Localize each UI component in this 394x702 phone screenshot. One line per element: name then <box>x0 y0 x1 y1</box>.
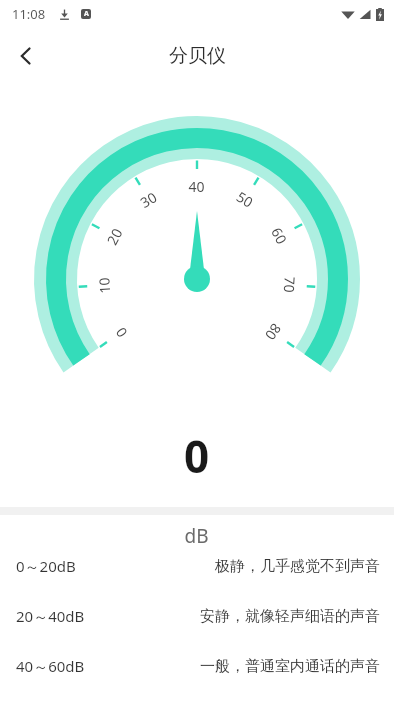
staticText: 一般，普通室内通话的声音 <box>200 657 380 676</box>
staticText: 0～20dB <box>16 556 76 576</box>
staticText: 11:08 <box>12 5 46 23</box>
staticText: 极静，几乎感觉不到声音 <box>215 557 380 576</box>
staticText: 40～60dB <box>16 656 85 676</box>
button[interactable]: 20～40dB <box>0 591 394 641</box>
button[interactable]: Back <box>4 34 48 78</box>
staticText: 分贝仪 <box>169 44 226 68</box>
staticText: 20～40dB <box>16 606 85 626</box>
staticText: A <box>84 9 89 19</box>
staticText: 安静，就像轻声细语的声音 <box>200 607 380 626</box>
button[interactable]: 40～60dB <box>0 641 394 691</box>
button[interactable]: 0～20dB <box>0 541 394 591</box>
